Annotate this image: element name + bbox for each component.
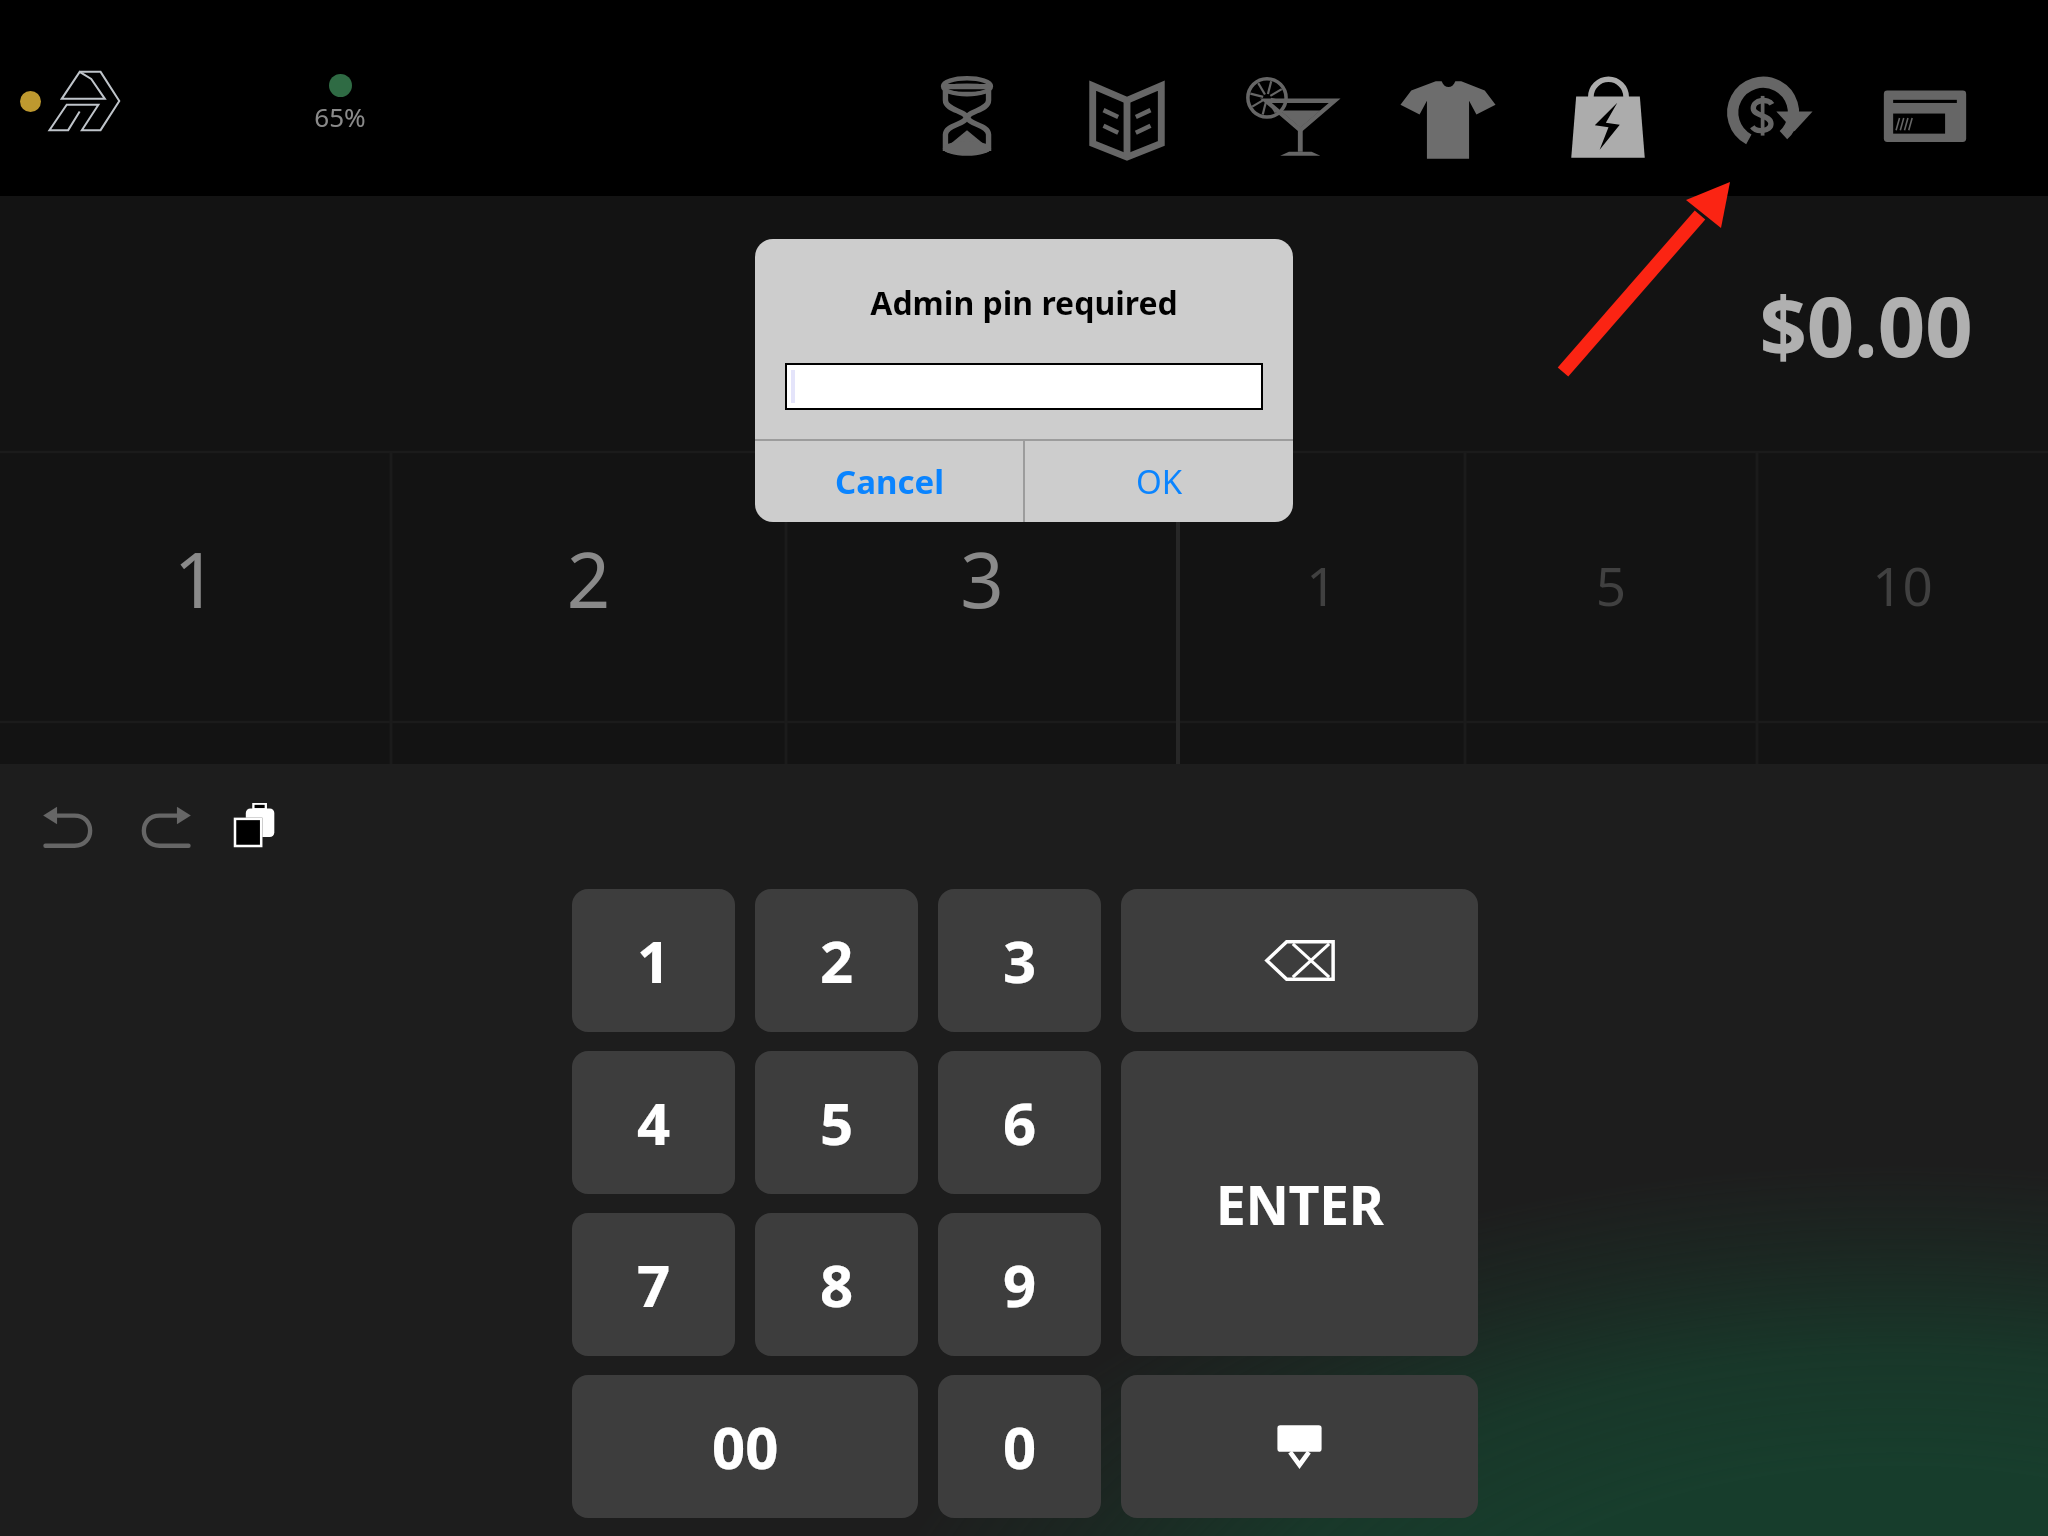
button[interactable]: Open orders xyxy=(909,58,1025,174)
button[interactable]: 9 xyxy=(938,1213,1101,1356)
button[interactable]: 00 xyxy=(572,1375,918,1518)
staticText: 6 xyxy=(1003,1083,1037,1162)
button[interactable]: Undo xyxy=(26,781,116,871)
staticText: 1 xyxy=(637,921,671,1000)
staticText: $0.00 xyxy=(1684,268,2048,381)
staticText: 7 xyxy=(637,1245,671,1324)
button[interactable]: Duplicate xyxy=(210,781,300,871)
button[interactable]: Refund xyxy=(1710,58,1826,174)
staticText: 0 xyxy=(1003,1407,1037,1486)
staticText: Cancel xyxy=(835,459,944,504)
button[interactable]: 1 xyxy=(0,452,391,722)
button[interactable]: Backspace xyxy=(1121,889,1478,1032)
button[interactable]: App menu xyxy=(8,58,132,142)
staticText: 3 xyxy=(786,527,1178,631)
button[interactable]: 3 xyxy=(938,889,1101,1032)
button[interactable]: Hide keyboard xyxy=(1121,1375,1478,1518)
button[interactable]: 1 xyxy=(572,889,735,1032)
staticText: 00 xyxy=(712,1407,779,1486)
staticText: 2 xyxy=(820,921,854,1000)
staticText: 4 xyxy=(637,1083,671,1162)
button[interactable]: ENTER xyxy=(1121,1051,1478,1356)
button[interactable]: 5 xyxy=(1465,452,1757,722)
button[interactable]: 2 xyxy=(391,452,786,722)
button[interactable]: Battery 65 percent xyxy=(280,58,400,142)
button[interactable]: 2 xyxy=(755,889,918,1032)
staticText: 65% xyxy=(280,99,400,134)
button[interactable]: 7 xyxy=(572,1213,735,1356)
staticText: 9 xyxy=(1003,1245,1037,1324)
staticText: 1 xyxy=(1178,549,1465,621)
staticText: 5 xyxy=(820,1083,854,1162)
button[interactable]: Quick sale xyxy=(1550,58,1666,174)
button[interactable]: Cancel xyxy=(755,441,1023,522)
button[interactable]: 5 xyxy=(755,1051,918,1194)
button[interactable]: 4 xyxy=(572,1051,735,1194)
button[interactable]: 3 xyxy=(786,452,1178,722)
button[interactable]: 6 xyxy=(938,1051,1101,1194)
staticText: 2 xyxy=(391,527,786,631)
staticText: OK xyxy=(1136,459,1183,504)
button[interactable]: Redo xyxy=(118,781,208,871)
button[interactable]: 0 xyxy=(938,1375,1101,1518)
staticText: 3 xyxy=(1003,921,1037,1000)
staticText: 8 xyxy=(820,1245,854,1324)
button[interactable]: 10 xyxy=(1757,452,2048,722)
button[interactable]: Apparel xyxy=(1390,58,1506,174)
staticText: Admin pin required xyxy=(755,281,1293,325)
staticText: ENTER xyxy=(1216,1168,1384,1240)
staticText: 1 xyxy=(0,527,391,631)
button[interactable]: 8 xyxy=(755,1213,918,1356)
staticText: 5 xyxy=(1465,549,1757,621)
button[interactable]: OK xyxy=(1025,441,1293,522)
staticText: 10 xyxy=(1757,549,2048,621)
button[interactable]: Drinks xyxy=(1232,58,1348,174)
button[interactable]: $0.00 xyxy=(1684,196,2048,452)
button[interactable]: 1 xyxy=(1178,452,1465,722)
button[interactable]: Menu xyxy=(1069,58,1185,174)
button[interactable]: Card payment xyxy=(1867,58,1983,174)
